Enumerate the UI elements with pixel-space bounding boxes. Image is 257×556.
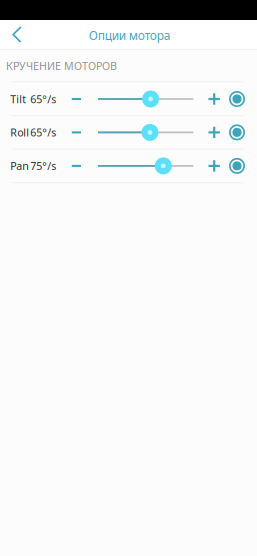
button[interactable]: Back bbox=[1, 20, 33, 49]
button[interactable]: Toggle Roll axis bbox=[224, 117, 250, 147]
staticText: КРУЧЕНИЕ МОТОРОВ bbox=[6, 59, 117, 73]
button[interactable]: Decrease Pan bbox=[62, 151, 90, 181]
button[interactable]: Increase Pan bbox=[200, 151, 228, 181]
button[interactable]: Toggle Pan axis bbox=[224, 151, 250, 181]
staticText: Tilt bbox=[10, 92, 26, 106]
button[interactable]: Опции мотора bbox=[89, 25, 171, 45]
button[interactable]: Increase Roll bbox=[200, 117, 228, 147]
button[interactable]: Toggle Tilt axis bbox=[224, 84, 250, 114]
staticText: 75°/s bbox=[30, 159, 56, 173]
button[interactable]: Decrease Roll bbox=[62, 117, 90, 147]
staticText: 65°/s bbox=[30, 125, 56, 139]
button[interactable]: Increase Tilt bbox=[200, 84, 228, 114]
button[interactable]: Decrease Tilt bbox=[62, 84, 90, 114]
staticText: 65°/s bbox=[30, 92, 56, 106]
staticText: Pan bbox=[10, 159, 29, 173]
staticText: Опции мотора bbox=[89, 27, 171, 43]
staticText: Roll bbox=[10, 125, 29, 139]
